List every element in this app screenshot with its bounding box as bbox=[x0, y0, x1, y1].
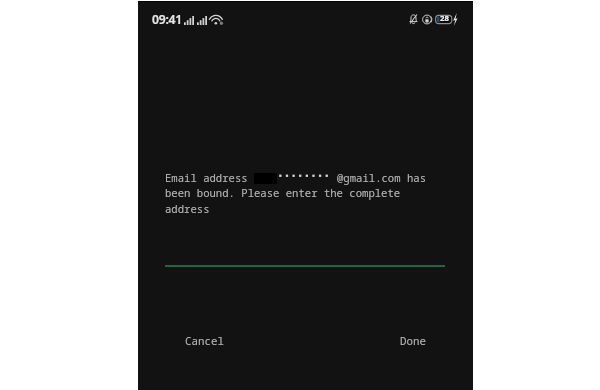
staticText: address bbox=[165, 202, 210, 216]
staticText: 09:41 bbox=[152, 11, 182, 28]
button[interactable]: Email address input field bbox=[165, 237, 445, 269]
staticText: @gmail.com has bbox=[337, 171, 426, 185]
staticText: 28 bbox=[440, 13, 449, 24]
staticText: Done bbox=[400, 333, 426, 348]
staticText: Email address bbox=[165, 171, 248, 185]
button[interactable]: Done bbox=[386, 321, 440, 360]
staticText: been bound. Please enter the complete bbox=[165, 186, 401, 200]
staticText: Cancel bbox=[185, 333, 224, 348]
button[interactable]: Cancel bbox=[171, 321, 238, 360]
